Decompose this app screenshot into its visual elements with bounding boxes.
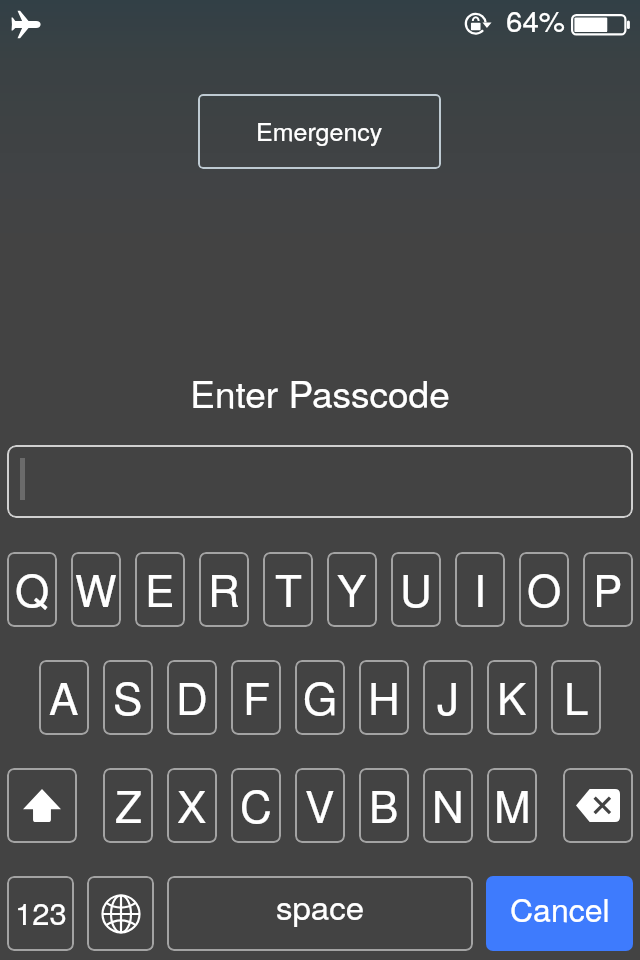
staticText: T: [275, 556, 302, 619]
button[interactable]: L: [551, 660, 601, 735]
staticText: A: [49, 664, 79, 727]
staticText: Cancel: [510, 885, 610, 931]
staticText: H: [368, 664, 400, 727]
other: Rotation lock: [462, 8, 498, 42]
button[interactable]: A: [39, 660, 89, 735]
staticText: E: [145, 556, 175, 619]
staticText: L: [564, 664, 589, 727]
staticText: K: [497, 664, 527, 727]
button[interactable]: Emergency: [198, 94, 441, 169]
button[interactable]: J: [423, 660, 473, 735]
button[interactable]: Shift: [7, 768, 77, 843]
staticText: S: [113, 664, 143, 727]
other: Battery 64 percent: [571, 14, 631, 37]
button[interactable]: W: [71, 552, 121, 627]
staticText: space: [276, 882, 365, 929]
button[interactable]: V: [295, 768, 345, 843]
button[interactable]: K: [487, 660, 537, 735]
staticText: 123: [15, 889, 67, 933]
staticText: U: [400, 556, 432, 619]
button[interactable]: G: [295, 660, 345, 735]
staticText: J: [437, 664, 459, 727]
other: Airplane mode: [9, 9, 43, 40]
button[interactable]: Passcode field: [7, 445, 633, 518]
button[interactable]: space: [167, 876, 473, 951]
staticText: F: [243, 664, 270, 727]
staticText: B: [369, 772, 399, 835]
staticText: P: [593, 556, 623, 619]
button[interactable]: O: [519, 552, 569, 627]
staticText: I: [474, 556, 487, 619]
button[interactable]: Y: [327, 552, 377, 627]
staticText: G: [303, 664, 338, 727]
staticText: Z: [115, 772, 142, 835]
button[interactable]: F: [231, 660, 281, 735]
button[interactable]: Cancel: [486, 876, 633, 951]
button[interactable]: H: [359, 660, 409, 735]
button[interactable]: I: [455, 552, 505, 627]
button[interactable]: C: [231, 768, 281, 843]
button[interactable]: T: [263, 552, 313, 627]
button[interactable]: Backspace: [563, 768, 633, 843]
staticText: R: [208, 556, 240, 619]
button[interactable]: D: [167, 660, 217, 735]
staticText: N: [432, 772, 464, 835]
button[interactable]: U: [391, 552, 441, 627]
button[interactable]: N: [423, 768, 473, 843]
staticText: X: [177, 772, 207, 835]
staticText: 64%: [506, 0, 566, 40]
button[interactable]: Z: [103, 768, 153, 843]
staticText: V: [305, 772, 335, 835]
button[interactable]: Change keyboard: [87, 876, 154, 951]
button[interactable]: Q: [7, 552, 57, 627]
button[interactable]: M: [487, 768, 537, 843]
staticText: Q: [15, 556, 50, 619]
staticText: D: [176, 664, 208, 727]
button[interactable]: X: [167, 768, 217, 843]
button[interactable]: 123: [7, 876, 74, 951]
staticText: Y: [337, 556, 367, 619]
button[interactable]: E: [135, 552, 185, 627]
staticText: W: [75, 556, 117, 619]
staticText: M: [494, 772, 531, 835]
staticText: Enter Passcode: [0, 366, 640, 419]
staticText: Emergency: [256, 112, 383, 148]
button[interactable]: P: [583, 552, 633, 627]
staticText: O: [527, 556, 562, 619]
button[interactable]: R: [199, 552, 249, 627]
button[interactable]: S: [103, 660, 153, 735]
button[interactable]: B: [359, 768, 409, 843]
staticText: C: [240, 772, 272, 835]
